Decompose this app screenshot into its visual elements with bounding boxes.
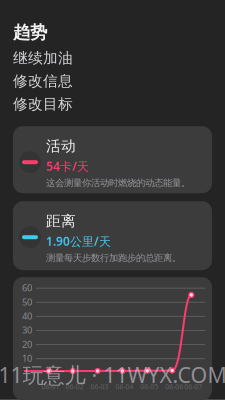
button[interactable]: 继续加油 bbox=[0, 43, 225, 67]
staticText: 40 bbox=[22, 310, 32, 322]
staticText: 54卡/天 bbox=[46, 158, 89, 174]
button[interactable]: 修改信息 bbox=[0, 67, 225, 90]
staticText: 06-02 bbox=[66, 382, 84, 391]
staticText: 50 bbox=[22, 296, 32, 308]
staticText: 这会测量你活动时燃烧的动态能量。 bbox=[46, 177, 190, 189]
staticText: 30 bbox=[22, 324, 32, 336]
staticText: 06-07 bbox=[184, 382, 202, 391]
staticText: 修改信息 bbox=[13, 72, 73, 90]
staticText: 06-01 bbox=[42, 382, 60, 391]
staticText: 11玩意儿 · 11WYX.COM bbox=[0, 360, 225, 389]
button[interactable]: 活动 bbox=[13, 126, 212, 193]
staticText: 10 bbox=[22, 352, 32, 364]
staticText: 距离 bbox=[46, 212, 76, 230]
button[interactable]: 距离 bbox=[13, 201, 212, 270]
button[interactable]: 修改目标 bbox=[0, 90, 225, 113]
staticText: 06-04 bbox=[115, 382, 133, 391]
staticText: 继续加油 bbox=[13, 49, 73, 67]
staticText: 趋势 bbox=[13, 22, 47, 43]
staticText: 06-06 bbox=[165, 382, 183, 391]
staticText: 测量每天步数行加跑步的总距离。 bbox=[46, 252, 181, 264]
staticText: 06-05 bbox=[140, 382, 158, 391]
staticText: 60 bbox=[22, 281, 32, 294]
staticText: 06-03 bbox=[91, 382, 109, 391]
staticText: 修改目标 bbox=[13, 95, 73, 113]
staticText: 20 bbox=[22, 338, 32, 350]
staticText: 1.90公里/天 bbox=[46, 233, 111, 249]
staticText: 活动 bbox=[46, 137, 76, 155]
